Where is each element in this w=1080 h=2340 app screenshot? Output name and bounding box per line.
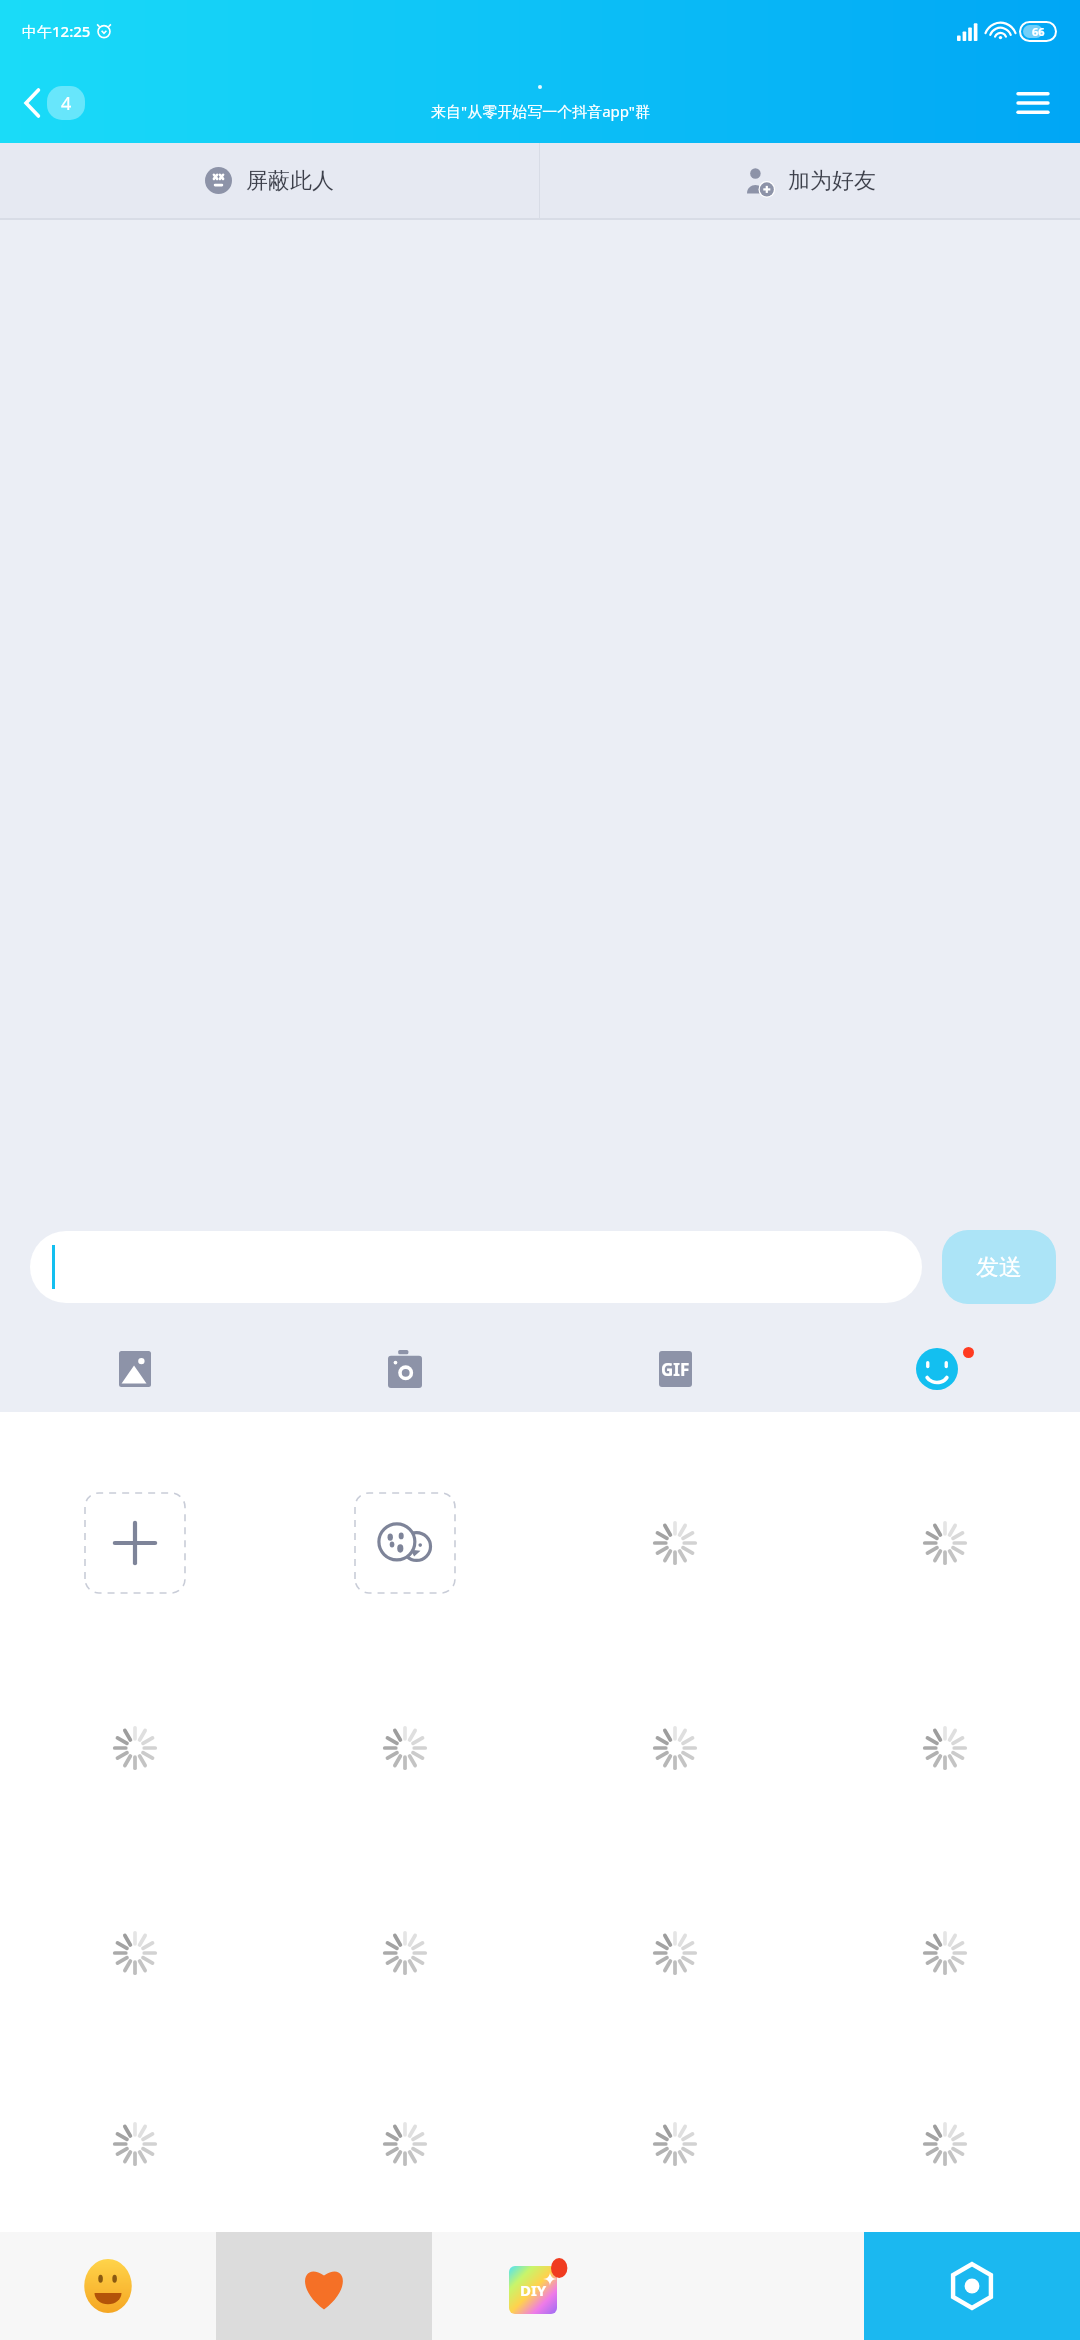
- button[interactable]: 发送: [942, 1230, 1056, 1304]
- button[interactable]: Sticker: [85, 1493, 185, 1593]
- staticText: 屏蔽此人: [246, 167, 334, 195]
- staticText: 来自"从零开始写一个抖音app"群: [431, 101, 650, 121]
- button[interactable]: [30, 1231, 922, 1303]
- staticText: 中午12:25: [22, 21, 91, 41]
- button[interactable]: Camera: [270, 1326, 540, 1412]
- staticText: 加为好友: [788, 167, 876, 195]
- staticText: GIF: [661, 1358, 690, 1381]
- staticText: 发送: [976, 1253, 1022, 1282]
- button[interactable]: Emoji: [810, 1326, 1080, 1412]
- button[interactable]: Emoji tab: [0, 2232, 216, 2340]
- button[interactable]: 加为好友: [540, 143, 1080, 218]
- button[interactable]: Favorites tab: [216, 2232, 432, 2340]
- button[interactable]: GIF: [540, 1326, 810, 1412]
- button[interactable]: Gallery: [0, 1326, 270, 1412]
- button[interactable]: Sticker: [355, 1493, 455, 1593]
- button[interactable]: Menu: [1008, 82, 1058, 124]
- button[interactable]: 屏蔽此人: [0, 143, 539, 218]
- button[interactable]: Back: [18, 80, 91, 126]
- button[interactable]: Store: [864, 2232, 1080, 2340]
- button[interactable]: DIY tab: [432, 2232, 648, 2340]
- staticText: 4: [61, 91, 72, 116]
- staticText: 66: [1032, 24, 1045, 39]
- staticText: DIY: [520, 2280, 547, 2300]
